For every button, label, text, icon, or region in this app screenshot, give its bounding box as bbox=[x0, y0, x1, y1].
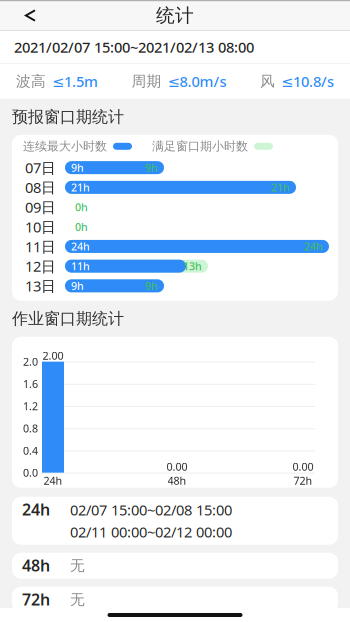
staticText: 13h bbox=[183, 259, 202, 273]
staticText: 13日 bbox=[25, 276, 56, 296]
button[interactable]: Back bbox=[0, 0, 62, 31]
staticText: 0.4 bbox=[23, 443, 38, 458]
staticText: 波高 bbox=[16, 72, 46, 90]
staticText: 21h bbox=[271, 180, 290, 194]
staticText: 48h bbox=[22, 555, 50, 576]
staticText: 1.2 bbox=[23, 399, 38, 413]
staticText: 作业窗口期统计 bbox=[12, 309, 124, 329]
staticText: 预报窗口期统计 bbox=[12, 107, 124, 127]
staticText: ≤10.8/s bbox=[281, 72, 334, 91]
staticText: 0.8 bbox=[23, 421, 38, 435]
staticText: 11日 bbox=[25, 237, 56, 256]
staticText: ≤1.5m bbox=[52, 72, 98, 91]
staticText: 02/11 00:00~02/12 00:00 bbox=[70, 522, 232, 541]
staticText: 12日 bbox=[25, 256, 56, 276]
staticText: 48h bbox=[167, 474, 186, 488]
staticText: 0.0 bbox=[23, 466, 38, 480]
staticText: 0.00 bbox=[166, 460, 187, 474]
staticText: 9h bbox=[71, 279, 84, 293]
staticText: 1.6 bbox=[23, 377, 38, 391]
staticText: 统计 bbox=[156, 4, 194, 27]
staticText: 2.00 bbox=[42, 349, 63, 363]
staticText: 10日 bbox=[25, 217, 56, 236]
staticText: 0h bbox=[75, 200, 88, 214]
staticText: 无 bbox=[70, 557, 85, 575]
staticText: 07日 bbox=[25, 158, 56, 177]
staticText: 21h bbox=[71, 180, 90, 194]
staticText: 02/07 15:00~02/08 15:00 bbox=[70, 500, 232, 519]
staticText: 9h bbox=[71, 161, 84, 175]
staticText: 风 bbox=[260, 72, 275, 90]
staticText: 24h bbox=[43, 474, 62, 488]
staticText: 24h bbox=[304, 239, 323, 254]
staticText: 周期 bbox=[131, 72, 161, 90]
staticText: 2.0 bbox=[23, 355, 38, 369]
button[interactable]: 48h bbox=[12, 553, 338, 579]
staticText: 24h bbox=[71, 239, 90, 254]
staticText: 满足窗口期小时数 bbox=[152, 139, 248, 154]
staticText: 08日 bbox=[25, 178, 56, 197]
staticText: 连续最大小时数 bbox=[23, 139, 107, 154]
staticText: 0h bbox=[75, 220, 88, 234]
button[interactable]: 24h bbox=[12, 497, 338, 545]
staticText: 无 bbox=[70, 591, 85, 609]
staticText: 9h bbox=[145, 161, 158, 175]
staticText: 2021/02/07 15:00~2021/02/13 08:00 bbox=[14, 37, 254, 57]
staticText: ≤8.0m/s bbox=[167, 72, 226, 91]
staticText: 0.00 bbox=[292, 460, 313, 474]
staticText: 09日 bbox=[25, 197, 56, 217]
staticText: 72h bbox=[293, 474, 312, 488]
staticText: 11h bbox=[71, 259, 90, 273]
staticText: 9h bbox=[145, 279, 158, 293]
staticText: 72h bbox=[22, 589, 50, 610]
staticText: 24h bbox=[22, 499, 50, 520]
button[interactable]: 72h bbox=[12, 587, 338, 613]
